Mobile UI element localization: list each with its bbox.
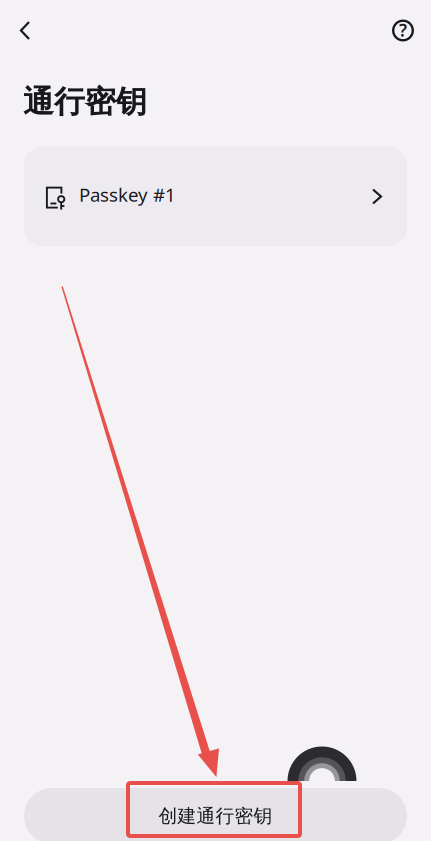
button[interactable]: Help [381, 8, 425, 52]
staticText: ? [399, 18, 407, 41]
staticText: 创建通行密钥 [158, 804, 272, 827]
button[interactable]: 创建通行密钥 [24, 788, 407, 841]
button[interactable]: Passkey #1 [24, 147, 407, 246]
staticText: Passkey #1 [79, 182, 176, 207]
staticText: 通行密钥 [23, 83, 147, 121]
button[interactable]: Back [3, 8, 47, 52]
